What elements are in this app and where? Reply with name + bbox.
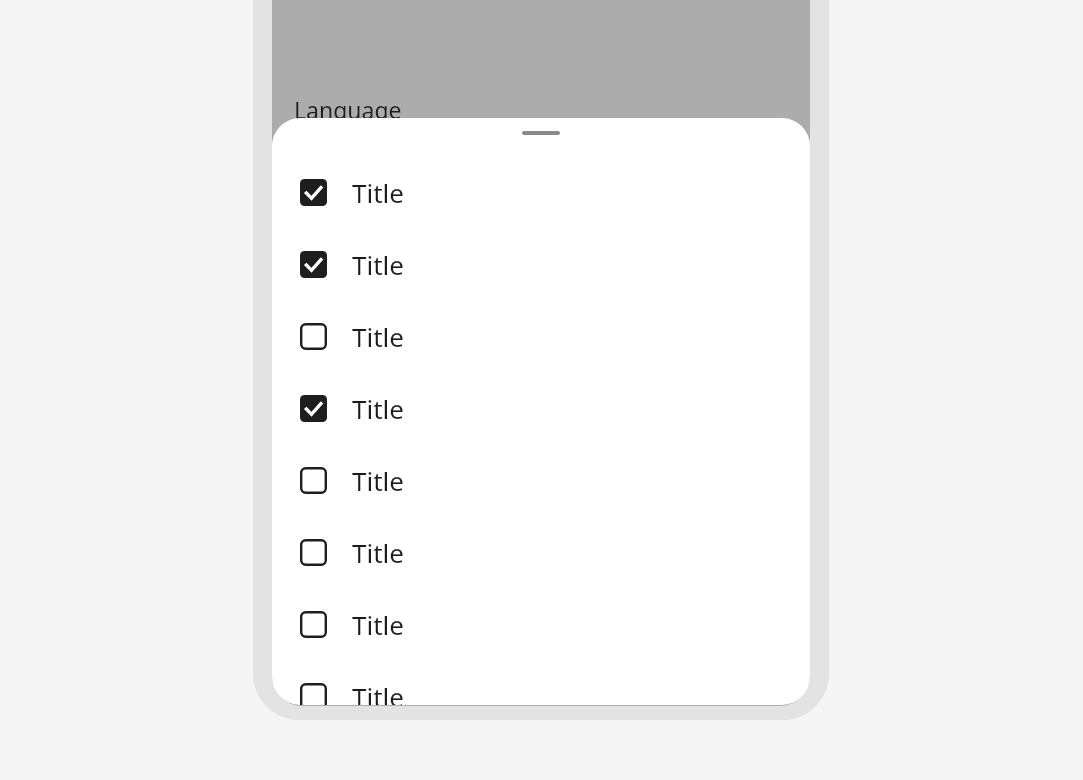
staticText: Title <box>352 607 404 642</box>
staticText: Language <box>294 94 402 125</box>
button[interactable]: Title <box>272 372 810 444</box>
staticText: Title <box>352 535 404 570</box>
staticText: Title <box>352 175 404 210</box>
button[interactable]: Title <box>272 588 810 660</box>
staticText: Title <box>352 391 404 426</box>
button[interactable]: Title <box>272 444 810 516</box>
staticText: Title <box>352 319 404 354</box>
button[interactable]: Title <box>272 516 810 588</box>
button[interactable]: Title <box>272 156 810 228</box>
button[interactable]: Title <box>272 300 810 372</box>
other: Drag handle <box>522 131 560 135</box>
staticText: Title <box>352 679 404 705</box>
button[interactable]: Title <box>272 228 810 300</box>
staticText: Title <box>352 247 404 282</box>
staticText: Title <box>352 463 404 498</box>
button[interactable]: Title <box>272 660 810 705</box>
